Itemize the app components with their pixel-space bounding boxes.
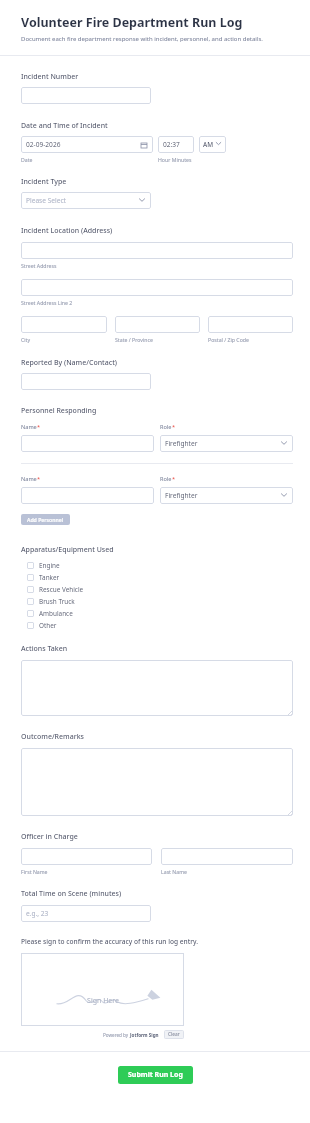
staticText: Name bbox=[21, 475, 37, 483]
staticText: Engine bbox=[39, 561, 60, 570]
staticText: Jotform Sign bbox=[130, 1032, 159, 1038]
staticText: * bbox=[172, 475, 176, 483]
button[interactable]: Incident Number bbox=[21, 87, 151, 104]
button[interactable]: Clear bbox=[164, 1030, 184, 1039]
staticText: Other bbox=[39, 621, 57, 630]
button[interactable]: Hour Minutes bbox=[158, 136, 194, 153]
button[interactable]: Other bbox=[21, 619, 293, 631]
staticText: Incident Type bbox=[21, 177, 67, 187]
button[interactable]: First Name bbox=[21, 848, 152, 865]
staticText: Firefighter bbox=[165, 491, 198, 500]
staticText: AM bbox=[203, 140, 214, 149]
staticText: 02-09-2026 bbox=[26, 140, 61, 149]
staticText: Sign Here bbox=[87, 996, 119, 1006]
button[interactable]: Brush Truck bbox=[21, 595, 293, 607]
button[interactable]: Role bbox=[160, 435, 293, 452]
staticText: 02:37 bbox=[163, 140, 180, 149]
staticText: Volunteer Fire Department Run Log bbox=[21, 14, 243, 31]
button[interactable]: Street Address Line 2 bbox=[21, 279, 293, 296]
staticText: Add Personnel bbox=[27, 516, 64, 523]
staticText: Document each fire department response w… bbox=[21, 35, 263, 43]
staticText: * bbox=[37, 475, 41, 483]
staticText: e.g., 23 bbox=[26, 909, 49, 918]
button[interactable]: Add Personnel bbox=[21, 514, 70, 525]
staticText: Ambulance bbox=[39, 609, 73, 618]
button[interactable]: State / Province bbox=[115, 316, 200, 333]
staticText: Street Address bbox=[21, 262, 57, 269]
staticText: Officer in Charge bbox=[21, 832, 78, 842]
staticText: Apparatus/Equipment Used bbox=[21, 545, 114, 555]
staticText: Incident Number bbox=[21, 72, 79, 82]
staticText: Clear bbox=[168, 1031, 180, 1038]
staticText: Postal / Zip Code bbox=[208, 336, 249, 343]
staticText: Street Address Line 2 bbox=[21, 299, 73, 306]
button[interactable]: Signature pad bbox=[21, 953, 184, 1026]
button[interactable]: Reported By bbox=[21, 373, 151, 390]
staticText: Brush Truck bbox=[39, 597, 75, 606]
staticText: Last Name bbox=[161, 868, 187, 875]
staticText: Personnel Responding bbox=[21, 406, 97, 416]
staticText: Submit Run Log bbox=[128, 1070, 183, 1080]
staticText: Role bbox=[160, 475, 172, 483]
staticText: State / Province bbox=[115, 336, 153, 343]
button[interactable]: Tanker bbox=[21, 571, 293, 583]
staticText: Role bbox=[160, 423, 172, 431]
button[interactable]: AM PM bbox=[199, 136, 226, 153]
staticText: Date and Time of Incident bbox=[21, 121, 108, 131]
staticText: Please Select bbox=[26, 196, 67, 205]
button[interactable]: Incident Type bbox=[21, 192, 151, 209]
staticText: * bbox=[37, 423, 41, 431]
staticText: Name bbox=[21, 423, 37, 431]
button[interactable]: Role bbox=[160, 487, 293, 504]
button[interactable]: Date bbox=[21, 136, 153, 153]
button[interactable]: Postal / Zip Code bbox=[208, 316, 293, 333]
button[interactable]: Name bbox=[21, 435, 154, 452]
staticText: Actions Taken bbox=[21, 644, 68, 654]
button[interactable]: Total Time on Scene bbox=[21, 905, 151, 922]
staticText: Reported By (Name/Contact) bbox=[21, 358, 118, 368]
button[interactable]: Engine bbox=[21, 559, 293, 571]
button[interactable]: Street Address bbox=[21, 242, 293, 259]
button[interactable]: Rescue Vehicle bbox=[21, 583, 293, 595]
staticText: Please sign to confirm the accuracy of t… bbox=[21, 937, 199, 946]
staticText: * bbox=[172, 423, 176, 431]
staticText: Rescue Vehicle bbox=[39, 585, 84, 594]
button[interactable]: City bbox=[21, 316, 107, 333]
staticText: First Name bbox=[21, 868, 48, 875]
button[interactable]: Ambulance bbox=[21, 607, 293, 619]
button[interactable]: Last Name bbox=[161, 848, 293, 865]
staticText: Total Time on Scene (minutes) bbox=[21, 889, 122, 899]
button[interactable]: Submit Run Log bbox=[118, 1066, 193, 1084]
staticText: Incident Location (Address) bbox=[21, 226, 113, 236]
staticText: Tanker bbox=[39, 573, 60, 582]
button[interactable]: Name bbox=[21, 487, 154, 504]
staticText: Date bbox=[21, 156, 33, 163]
staticText: City bbox=[21, 336, 31, 343]
staticText: Outcome/Remarks bbox=[21, 732, 84, 742]
button[interactable]: Outcome Remarks bbox=[21, 748, 293, 816]
button[interactable]: Actions Taken bbox=[21, 660, 293, 716]
staticText: Firefighter bbox=[165, 439, 198, 448]
staticText: Hour Minutes bbox=[158, 156, 192, 163]
staticText: Powered by bbox=[103, 1032, 130, 1038]
